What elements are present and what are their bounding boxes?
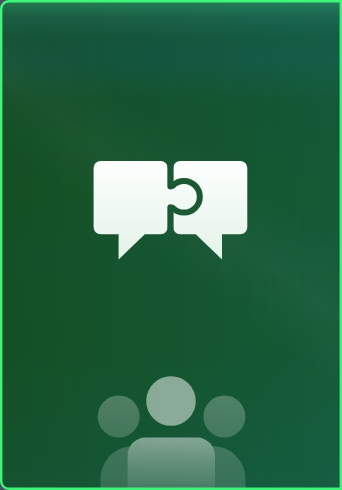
button[interactable]: Conversa app logo xyxy=(0,0,342,490)
